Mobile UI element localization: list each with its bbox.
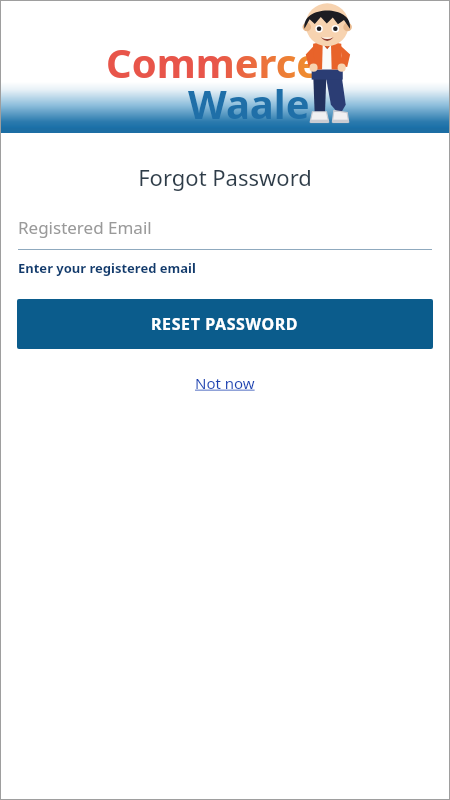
staticText: Registered Email <box>18 216 152 239</box>
staticText: Waale <box>188 76 310 130</box>
staticText: Forgot Password <box>0 162 450 192</box>
staticText: Not now <box>195 373 255 393</box>
staticText: RESET PASSWORD <box>151 313 299 335</box>
button[interactable]: RESET PASSWORD <box>17 299 433 349</box>
button[interactable]: Not now <box>187 371 263 395</box>
button[interactable]: Registered Email <box>18 216 432 250</box>
staticText: Enter your registered email <box>18 259 196 277</box>
staticText: Commerce <box>106 35 321 89</box>
